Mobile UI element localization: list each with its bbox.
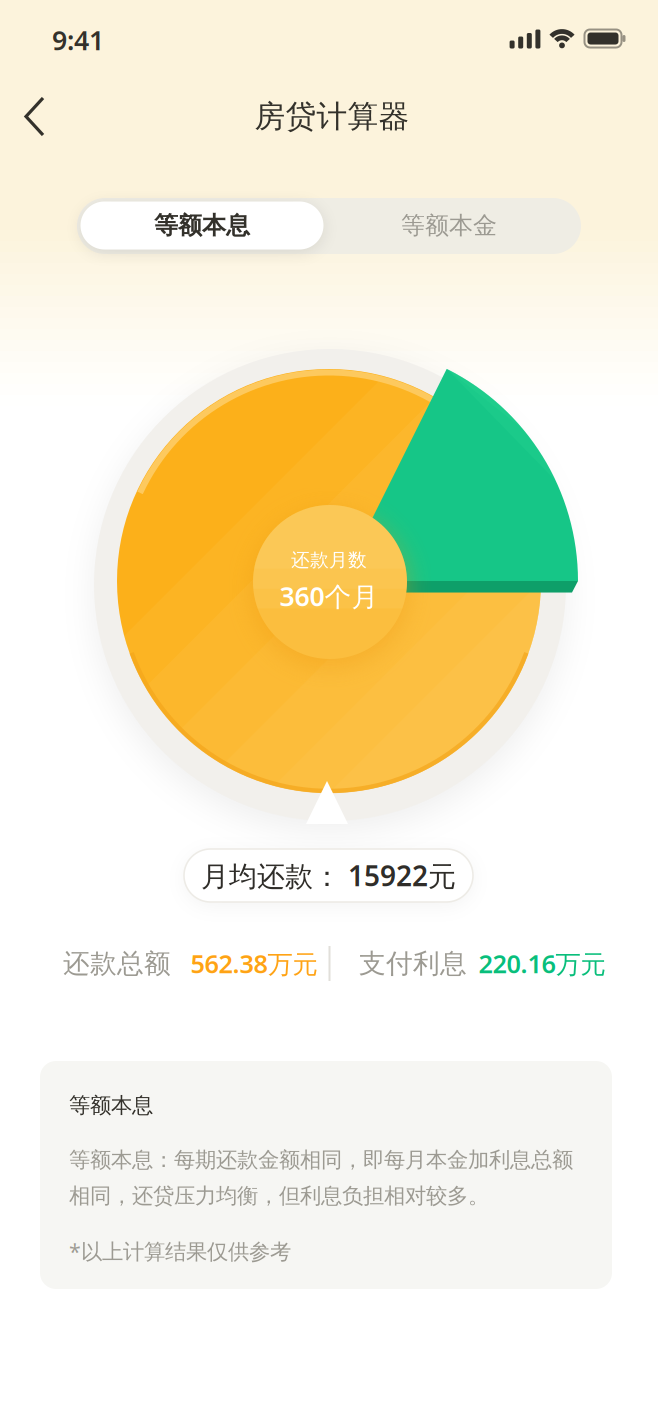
staticText: 相同，还贷压力均衡，但利息负担相对较多。 bbox=[69, 1183, 489, 1209]
staticText: 等额本息：每期还款金额相同，即每月本金加利息总额 bbox=[69, 1147, 573, 1173]
staticText: 562.38万元 bbox=[190, 947, 317, 980]
staticText: *以上计算结果仅供参考 bbox=[69, 1237, 291, 1265]
staticText: 360个月 bbox=[279, 578, 378, 614]
staticText: 房贷计算器 bbox=[254, 98, 409, 135]
staticText: 9:41 bbox=[52, 22, 104, 58]
staticText: 等额本息 bbox=[154, 211, 250, 240]
button[interactable] bbox=[10, 91, 62, 143]
staticText: 还款月数 bbox=[291, 548, 367, 571]
staticText: 还款总额 bbox=[63, 947, 171, 980]
staticText: 220.16万元 bbox=[478, 947, 605, 980]
staticText: 等额本息 bbox=[69, 1092, 153, 1119]
staticText: 等额本金 bbox=[401, 211, 497, 240]
button[interactable]: 等额本息 bbox=[80, 201, 323, 249]
button[interactable]: 等额本金 bbox=[324, 197, 574, 253]
staticText: 支付利息 bbox=[359, 947, 467, 980]
staticText: 月均还款： 15922元 bbox=[201, 857, 456, 894]
